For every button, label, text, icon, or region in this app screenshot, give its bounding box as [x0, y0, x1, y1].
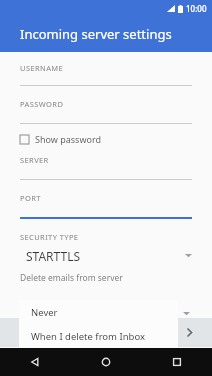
button[interactable]: When I delete from Inbox — [19, 324, 178, 348]
staticText: PASSWORD — [20, 99, 64, 109]
staticText: USERNAME — [20, 63, 64, 73]
staticText: Never — [31, 306, 58, 319]
staticText: Delete emails from server — [20, 272, 123, 284]
button[interactable]: Recent apps — [141, 348, 212, 376]
button[interactable]: Never — [19, 300, 178, 324]
button[interactable]: More options — [0, 318, 212, 347]
staticText: When I delete from Inbox — [31, 330, 145, 343]
staticText: SECURITY TYPE — [20, 232, 79, 242]
staticText: Incoming server settings — [20, 25, 172, 43]
other: More options — [187, 328, 192, 337]
button[interactable]: Show password — [20, 129, 192, 149]
staticText: PORT — [20, 193, 41, 203]
staticText: 10:00 — [186, 3, 207, 14]
button[interactable]: Home — [70, 348, 141, 376]
staticText: STARTTLS — [26, 248, 185, 264]
button[interactable]: STARTTLS — [20, 246, 192, 265]
staticText: Show password — [35, 133, 101, 145]
staticText: SERVER — [20, 155, 49, 165]
button[interactable]: Back — [0, 348, 70, 376]
